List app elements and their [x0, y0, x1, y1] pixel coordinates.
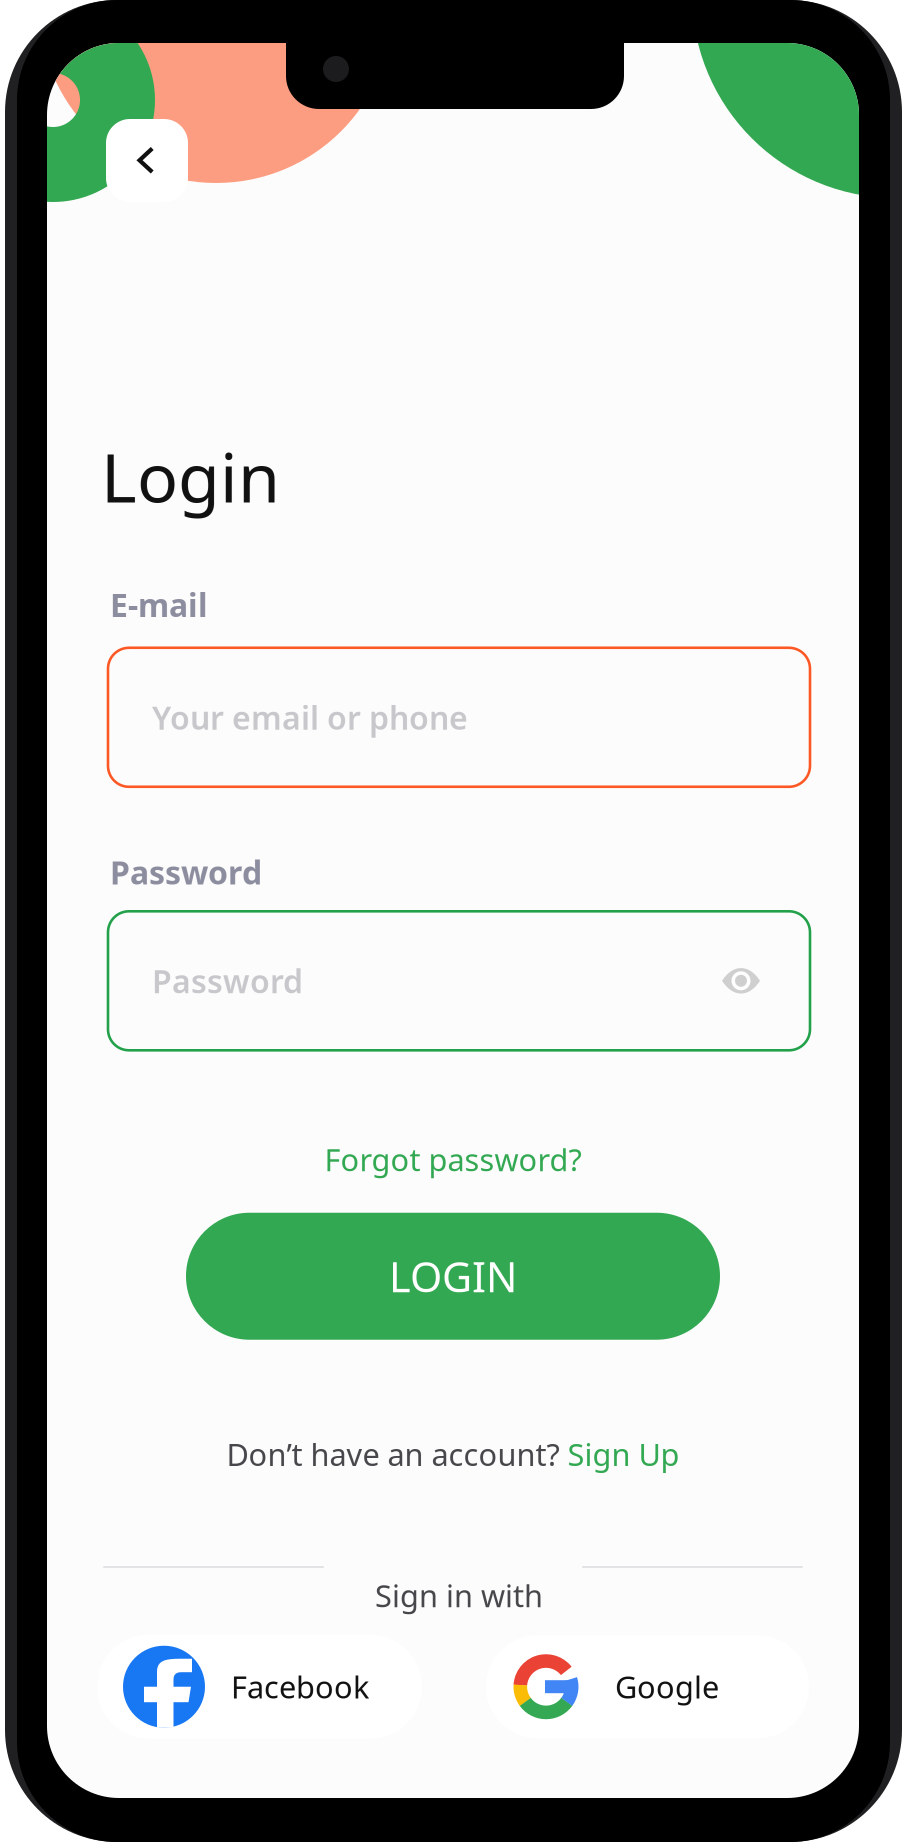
staticText: Sign Up	[567, 1434, 679, 1474]
staticText: Login	[101, 431, 280, 521]
button[interactable]: LOGIN	[186, 1213, 720, 1340]
button[interactable]: Sign Up	[567, 1434, 679, 1474]
button[interactable]: Back	[106, 119, 188, 202]
staticText: Sign in with	[375, 1575, 543, 1616]
staticText: Don’t have an account?	[226, 1434, 567, 1474]
staticText: Google	[615, 1666, 719, 1707]
staticText: Facebook	[231, 1666, 369, 1707]
button[interactable]: Forgot password?	[324, 1139, 581, 1180]
staticText: E-mail	[110, 583, 208, 626]
staticText: LOGIN	[389, 1249, 517, 1304]
button[interactable]: Google	[486, 1635, 809, 1738]
staticText: Password	[110, 851, 262, 893]
staticText: Password	[152, 959, 303, 1002]
staticText: Forgot password?	[324, 1139, 581, 1180]
button[interactable]: Facebook	[97, 1635, 422, 1739]
staticText: Your email or phone	[152, 696, 468, 738]
